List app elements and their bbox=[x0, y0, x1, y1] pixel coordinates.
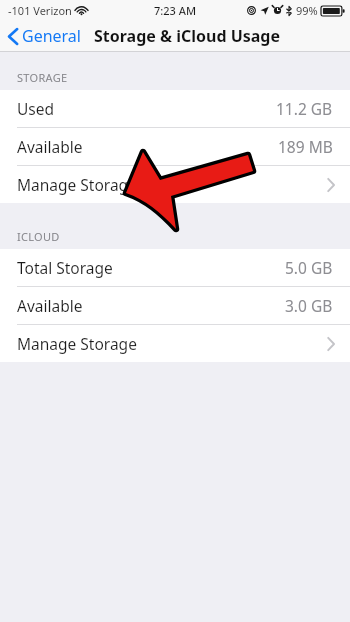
staticText: Total Storage bbox=[17, 257, 113, 278]
staticText: ICLOUD bbox=[17, 229, 60, 244]
staticText: 99% bbox=[296, 3, 318, 18]
button[interactable]: General bbox=[0, 21, 89, 51]
staticText: Available bbox=[17, 295, 83, 316]
staticText: 5.0 GB bbox=[285, 257, 333, 278]
staticText: Manage Storage bbox=[17, 333, 137, 354]
staticText: 11.2 GB bbox=[276, 98, 333, 119]
staticText: General bbox=[22, 25, 81, 47]
button[interactable]: Manage Storage bbox=[0, 325, 350, 362]
staticText: 7:23 AM bbox=[154, 3, 197, 18]
button[interactable]: Total Storage bbox=[0, 249, 350, 286]
staticText: -101 Verizon bbox=[8, 3, 72, 18]
button[interactable]: Available bbox=[0, 287, 350, 324]
staticText: 3.0 GB bbox=[285, 295, 333, 316]
other: Open bbox=[327, 337, 335, 351]
staticText: Available bbox=[17, 136, 83, 157]
button[interactable]: Manage Storage bbox=[0, 166, 350, 203]
staticText: Used bbox=[17, 98, 55, 119]
staticText: STORAGE bbox=[17, 70, 68, 85]
staticText: 189 MB bbox=[278, 136, 333, 157]
button[interactable]: Available bbox=[0, 128, 350, 165]
staticText: Manage Storage bbox=[17, 174, 137, 195]
button[interactable]: Used bbox=[0, 90, 350, 127]
other: Open bbox=[327, 178, 335, 192]
staticText: Storage & iCloud Usage bbox=[94, 25, 281, 47]
